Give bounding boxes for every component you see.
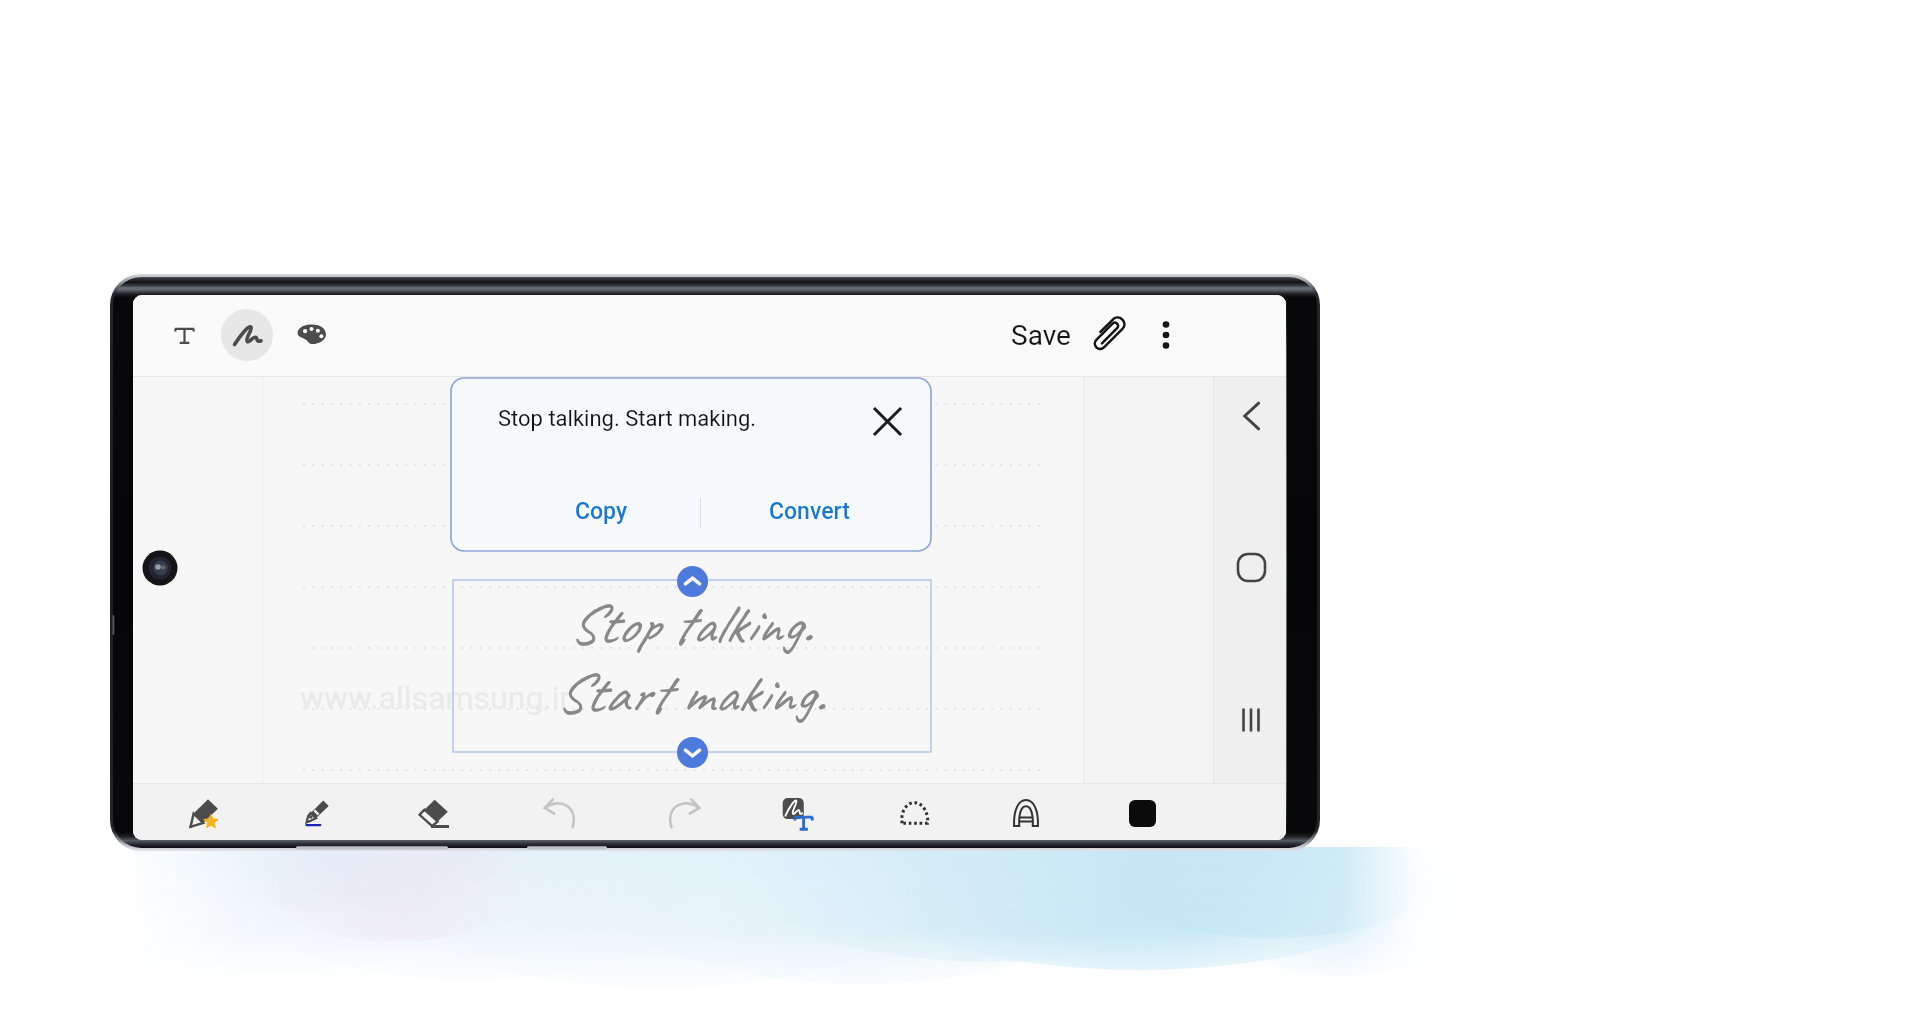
- button[interactable]: Close: [863, 397, 911, 445]
- button[interactable]: Colour palette: [285, 309, 337, 361]
- button[interactable]: Copy: [557, 490, 646, 533]
- button[interactable]: Text mode: [158, 309, 210, 361]
- button[interactable]: More options: [1138, 307, 1194, 363]
- button[interactable]: Attach file: [1080, 307, 1136, 363]
- button[interactable]: Eraser: [406, 785, 462, 840]
- button[interactable]: Back: [1223, 388, 1279, 444]
- button[interactable]: Favourite pen: [177, 785, 233, 840]
- button[interactable]: Convert: [751, 490, 868, 533]
- staticText: www.allsamsung.ir: [300, 679, 571, 717]
- button[interactable]: Extend selection down: [677, 737, 708, 768]
- button[interactable]: Handwriting mode: [221, 309, 273, 361]
- button[interactable]: Undo: [533, 785, 589, 840]
- staticText: Save: [1011, 319, 1071, 352]
- staticText: Start making.: [555, 658, 825, 729]
- button[interactable]: Lasso select: [886, 785, 942, 840]
- button[interactable]: Pen: [289, 785, 345, 840]
- button[interactable]: Text recognition: [998, 785, 1054, 840]
- button[interactable]: Extend selection up: [677, 566, 708, 597]
- button[interactable]: Save: [993, 307, 1089, 363]
- button[interactable]: Redo: [655, 785, 711, 840]
- staticText: Stop talking. Start making.: [498, 406, 757, 432]
- staticText: Convert: [769, 498, 850, 525]
- button[interactable]: Home: [1223, 539, 1279, 595]
- staticText: Copy: [575, 498, 628, 525]
- button[interactable]: Convert handwriting to text: [770, 785, 826, 840]
- button[interactable]: Recent apps: [1223, 692, 1279, 748]
- button[interactable]: Colour: [1114, 785, 1170, 840]
- staticText: Stop talking.: [568, 589, 813, 660]
